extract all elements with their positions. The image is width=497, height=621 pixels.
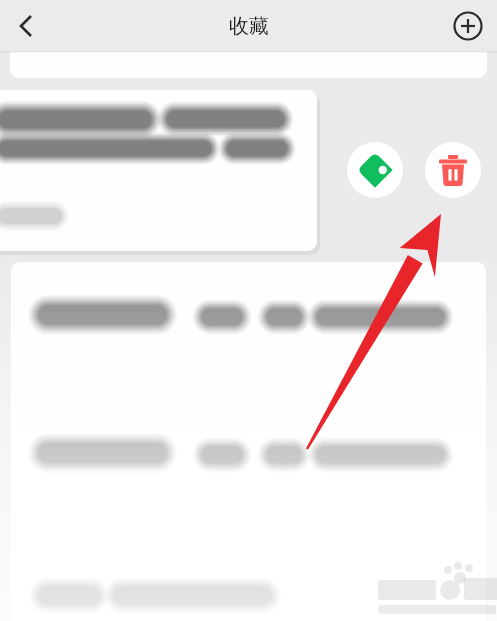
button[interactable]: 标签 bbox=[347, 142, 403, 198]
staticText: 收藏 bbox=[229, 14, 269, 39]
button[interactable]: 添加 bbox=[446, 4, 490, 48]
button[interactable]: 返回 bbox=[4, 4, 48, 48]
button[interactable]: 删除 bbox=[425, 142, 481, 198]
